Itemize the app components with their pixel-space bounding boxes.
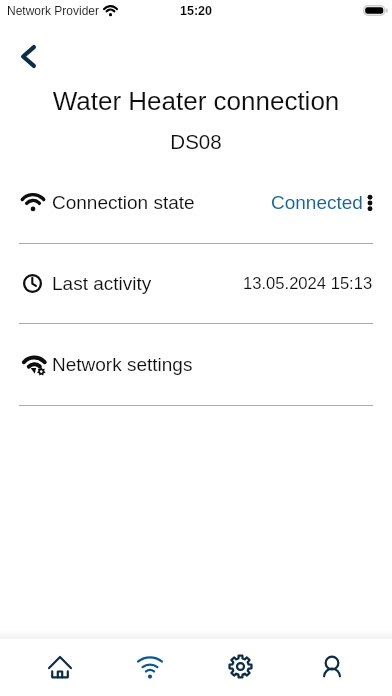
staticText: 15:20	[180, 4, 212, 18]
button[interactable]: Connection state	[0, 182, 392, 222]
button[interactable]: Network	[105, 639, 195, 696]
staticText: Connected	[271, 192, 363, 213]
button[interactable]: Last activity	[0, 263, 392, 303]
staticText: Connection state	[52, 192, 195, 213]
staticText: Last activity	[52, 273, 152, 294]
staticText: 13.05.2024 15:13	[243, 274, 373, 293]
staticText: Network settings	[52, 354, 193, 375]
button[interactable]: Profile	[286, 639, 377, 696]
button[interactable]: Back	[6, 34, 50, 78]
staticText: DS08	[0, 130, 392, 153]
staticText: Network Provider	[7, 4, 100, 17]
staticText: Water Heater connection	[0, 86, 392, 115]
button[interactable]: Settings	[195, 639, 286, 696]
button[interactable]: Network settings	[0, 344, 392, 384]
button[interactable]: Home	[15, 639, 105, 696]
